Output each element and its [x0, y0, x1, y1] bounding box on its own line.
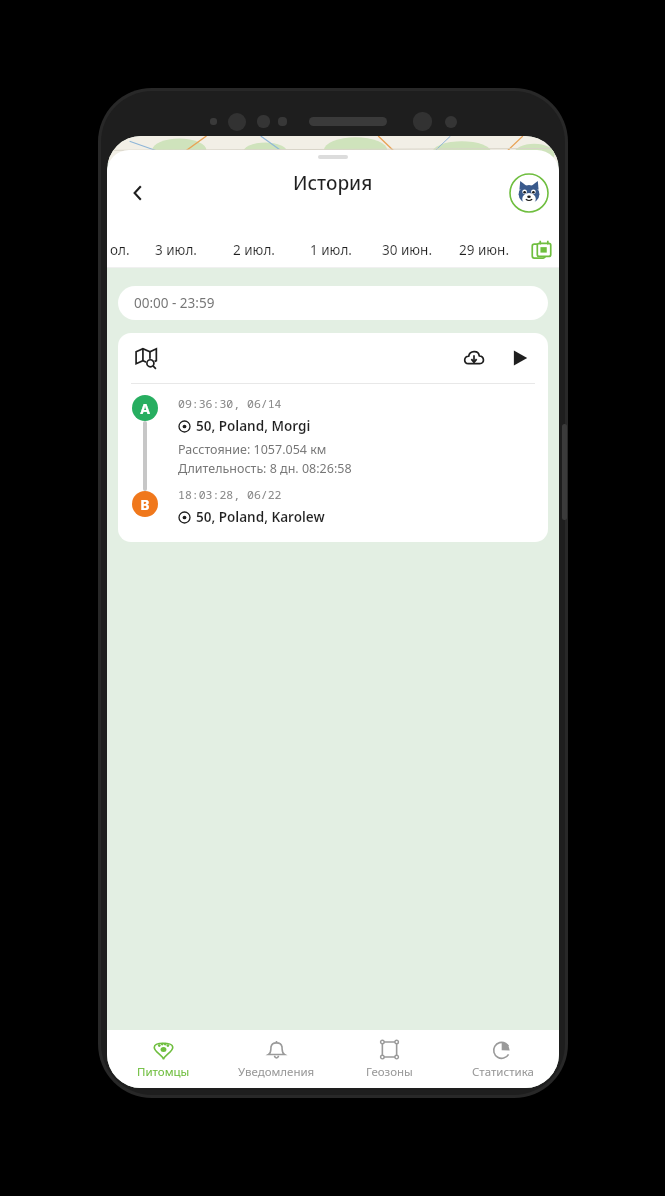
staticText: Расстояние: 1057.054 км [178, 441, 327, 458]
button[interactable]: Выбрать дату [523, 232, 559, 268]
button[interactable]: A [118, 384, 548, 542]
staticText: Геозоны [366, 1064, 413, 1080]
staticText: Питомцы [137, 1064, 190, 1080]
staticText: История [293, 170, 373, 196]
button[interactable]: 00:00 - 23:59 [118, 286, 548, 320]
staticText: Длительность: 8 дн. 08:26:58 [178, 460, 352, 477]
button[interactable]: Профиль питомца [509, 173, 549, 213]
staticText: 30 июн. [382, 241, 433, 259]
staticText: Уведомления [238, 1064, 315, 1080]
button[interactable]: Воспроизвести [501, 339, 539, 377]
button[interactable]: Показать на карте [127, 339, 165, 377]
button[interactable]: 3 июл. [137, 232, 215, 268]
staticText: 00:00 - 23:59 [134, 294, 215, 312]
staticText: 3 июл. [155, 241, 197, 259]
button[interactable]: Геозоны [333, 1030, 446, 1088]
staticText: Статистика [472, 1064, 534, 1080]
button[interactable]: ол. [107, 232, 137, 268]
staticText: 1 июл. [310, 241, 352, 259]
staticText: 18:03:28, 06/22 [178, 487, 282, 503]
button[interactable]: 1 июл. [292, 232, 369, 268]
button[interactable]: 2 июл. [215, 232, 292, 268]
button[interactable]: 30 июн. [369, 232, 446, 268]
button[interactable]: Назад [117, 172, 159, 214]
button[interactable]: Питомцы [107, 1030, 220, 1088]
staticText: 29 июн. [459, 241, 510, 259]
staticText: 2 июл. [233, 241, 275, 259]
staticText: 09:36:30, 06/14 [178, 396, 282, 412]
staticText: 50, Poland, Morgi [196, 417, 311, 435]
staticText: ол. [110, 241, 130, 259]
staticText: 50, Poland, Karolew [196, 508, 325, 526]
button[interactable]: 29 июн. [446, 232, 523, 268]
staticText: B [140, 495, 150, 514]
button[interactable]: Скачать [455, 339, 493, 377]
staticText: A [140, 399, 150, 418]
button[interactable]: Уведомления [220, 1030, 333, 1088]
button[interactable]: Статистика [446, 1030, 559, 1088]
